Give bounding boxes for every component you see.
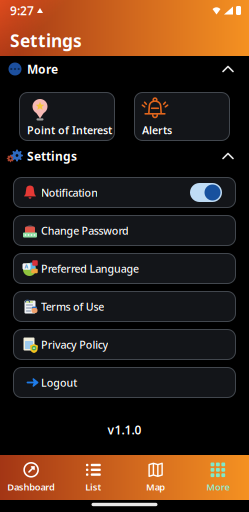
staticText: A: [24, 263, 28, 270]
staticText: List: [85, 481, 101, 493]
button[interactable]: Settings: [0, 143, 249, 169]
staticText: Alerts: [142, 123, 172, 137]
button[interactable]: A: [13, 253, 236, 284]
staticText: Map: [146, 481, 165, 493]
staticText: 9:27: [10, 2, 34, 18]
staticText: Dashboard: [7, 481, 55, 493]
button[interactable]: List: [62, 462, 124, 493]
button[interactable]: Notification: [13, 177, 236, 208]
staticText: v1.1.0: [107, 422, 141, 438]
button[interactable]: Map: [124, 462, 187, 493]
button[interactable]: Alerts: [134, 92, 230, 141]
staticText: Change Password: [41, 223, 129, 238]
staticText: Privacy Policy: [41, 337, 108, 352]
staticText: Point of Interest: [27, 123, 112, 137]
button[interactable]: Dashboard: [0, 462, 62, 493]
staticText: Settings: [27, 148, 77, 164]
button[interactable]: More: [187, 462, 249, 493]
button[interactable]: Notifications on: [190, 183, 222, 202]
staticText: More: [206, 481, 229, 493]
button[interactable]: More: [0, 56, 249, 82]
staticText: Terms of Use: [41, 299, 104, 314]
staticText: Preferred Language: [41, 261, 139, 276]
button[interactable]: Point of Interest: [19, 92, 115, 141]
staticText: Logout: [41, 375, 77, 390]
button[interactable]: Privacy Policy: [13, 329, 236, 360]
staticText: Notification: [41, 185, 98, 200]
button[interactable]: Terms of Use: [13, 291, 236, 322]
staticText: Settings: [10, 29, 82, 52]
button[interactable]: Logout: [13, 367, 236, 398]
button[interactable]: Change Password: [13, 215, 236, 246]
staticText: More: [27, 61, 58, 77]
